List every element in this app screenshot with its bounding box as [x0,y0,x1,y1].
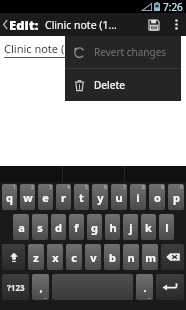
button[interactable]: ?123 [2,274,29,300]
staticText: 1 [13,184,16,191]
staticText: g [91,220,98,235]
button[interactable]: Revert changes [65,36,181,68]
staticText: _ [148,292,151,300]
staticText: f [74,220,79,235]
staticText: v [90,250,97,265]
button[interactable]: Delete [65,69,181,101]
staticText: y [97,190,104,205]
button[interactable]: h [105,214,120,240]
staticText: p [173,190,180,205]
button[interactable]: x [47,244,63,270]
button[interactable]: a [13,214,29,240]
button[interactable]: i [130,184,146,210]
button[interactable]: p [168,184,184,210]
button[interactable]: t [74,184,89,210]
staticText: Clinic note (1 [4,41,71,56]
staticText: 7:26 [163,0,183,13]
staticText: 7 [123,184,126,191]
staticText: t [79,190,84,205]
staticText: w [23,190,33,205]
staticText: b [109,250,116,265]
button[interactable] [52,274,133,300]
button[interactable]: k [141,214,156,240]
staticText: a [18,220,25,235]
button[interactable]: d [51,214,66,240]
staticText: 3 [49,184,52,191]
staticText: 9 [161,184,164,191]
staticText: 8 [142,184,145,191]
button[interactable]: m [142,244,158,270]
staticText: 0 [180,184,183,191]
staticText: s [37,220,43,235]
button[interactable]: g [87,214,102,240]
button[interactable]: o [149,184,165,210]
staticText: 6 [104,184,107,191]
button[interactable]: Save [142,13,166,36]
staticText: z [33,250,39,265]
button[interactable]: c [66,244,82,270]
staticText: c [71,250,77,265]
staticText: n [127,250,135,265]
staticText: Delete [94,78,126,92]
staticText: x [52,250,59,265]
staticText: 4 [67,184,70,191]
staticText: l [165,220,169,235]
button[interactable]: . [136,274,153,300]
staticText: j [129,220,133,235]
staticText: o [154,190,161,205]
staticText: d [55,220,62,235]
button[interactable]: r [56,184,71,210]
button[interactable]: Enter [156,274,184,300]
button[interactable]: Clinic note (1 [4,41,182,58]
staticText: r [61,190,66,205]
staticText: ?123 [7,282,25,293]
staticText: Revert changes [94,45,167,59]
staticText: Edit: [9,16,39,34]
button[interactable]: Edit: [0,13,41,36]
button[interactable]: l [159,214,174,240]
staticText: 2 [31,184,34,191]
button[interactable]: f [69,214,84,240]
staticText: , [39,280,43,295]
button[interactable]: b [104,244,120,270]
button[interactable]: z [28,244,44,270]
button[interactable]: j [123,214,138,240]
staticText: 5 [85,184,88,191]
button[interactable]: y [92,184,108,210]
staticText: . [143,280,147,295]
button[interactable]: , [32,274,49,300]
staticText: h [109,220,117,235]
staticText: e [42,190,49,205]
staticText: Clinic note (1… [45,18,117,32]
staticText: k [145,220,152,235]
staticText: u [115,190,123,205]
button[interactable]: n [123,244,139,270]
button[interactable]: v [85,244,101,270]
button[interactable]: e [38,184,53,210]
button[interactable]: Delete [161,244,184,270]
staticText: i [136,190,140,205]
button[interactable]: w [20,184,35,210]
staticText: m [145,250,156,265]
button[interactable]: s [32,214,48,240]
button[interactable]: q [2,184,17,210]
button[interactable]: u [111,184,127,210]
staticText: q [6,190,13,205]
staticText: _ [44,292,47,300]
button[interactable]: Shift [2,244,25,270]
button[interactable]: More options [166,13,186,36]
